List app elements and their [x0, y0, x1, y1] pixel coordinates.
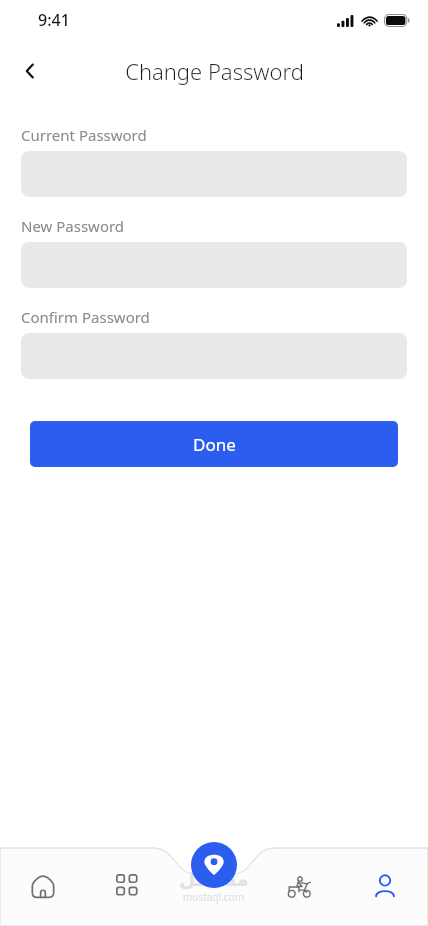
- staticText: Confirm Password: [21, 307, 150, 327]
- staticText: Done: [193, 433, 236, 456]
- staticText: 9:41: [38, 9, 70, 31]
- button[interactable]: Done: [30, 421, 398, 467]
- button[interactable]: Profile: [342, 848, 428, 926]
- button[interactable]: Delivery: [256, 848, 342, 926]
- button[interactable]: Home: [0, 848, 85, 926]
- staticText: Change Password: [125, 56, 304, 86]
- staticText: mostaql.com: [183, 890, 245, 904]
- button[interactable]: Back: [8, 49, 52, 93]
- button[interactable]: Categories: [85, 848, 170, 926]
- button[interactable]: Location: [191, 842, 237, 888]
- staticText: Current Password: [21, 125, 147, 145]
- staticText: مستقل: [179, 868, 249, 890]
- staticText: New Password: [21, 216, 125, 236]
